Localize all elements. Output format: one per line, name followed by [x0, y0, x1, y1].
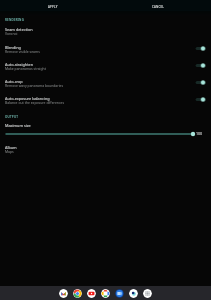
staticText: Seam detection [5, 27, 33, 32]
staticText: Auto-exposure balancing [5, 96, 50, 101]
staticText: APPLY [48, 5, 58, 9]
button[interactable]: Seam detection [0, 26, 211, 43]
staticText: Auto-crop [5, 79, 23, 84]
button[interactable]: Messages [115, 289, 124, 298]
button[interactable]: Blending [0, 44, 211, 61]
button[interactable]: Toggle setting [194, 61, 206, 70]
staticText: Make panoramas straight [5, 66, 46, 71]
staticText: 100 [196, 131, 203, 136]
staticText: Maps [5, 149, 14, 154]
staticText: RENDERING [5, 18, 25, 22]
button[interactable]: Album [0, 144, 211, 161]
button[interactable]: Toggle setting [194, 78, 206, 87]
button[interactable]: Auto-exposure balancing [0, 95, 211, 112]
button[interactable]: Gmail [59, 289, 68, 298]
staticText: CANCEL [152, 5, 165, 9]
staticText: OUTPUT [5, 115, 19, 119]
button[interactable]: Toggle setting [194, 95, 206, 104]
button[interactable]: Google Photos [101, 289, 110, 298]
staticText: Auto-straighten [5, 62, 33, 67]
button[interactable]: Maximum size [0, 122, 211, 139]
button[interactable]: Auto-straighten [0, 61, 211, 78]
button[interactable]: Chrome [73, 289, 82, 298]
staticText: Voronoi [5, 31, 18, 36]
staticText: Album [5, 145, 17, 150]
staticText: Remove wavy panorama boundaries [5, 83, 64, 88]
button[interactable]: YouTube [87, 289, 96, 298]
staticText: Blending [5, 45, 21, 50]
button[interactable]: APPLY [0, 0, 105, 11]
button[interactable]: Toggle setting [194, 44, 206, 53]
button[interactable]: CANCEL [105, 0, 211, 11]
button[interactable]: Auto-crop [0, 78, 211, 95]
staticText: Maximum size [5, 123, 31, 128]
staticText: Balance out the exposure differences [5, 100, 65, 105]
button[interactable]: Camera [129, 289, 138, 298]
button[interactable]: All apps [143, 289, 152, 298]
staticText: Remove visible seams [5, 49, 40, 54]
